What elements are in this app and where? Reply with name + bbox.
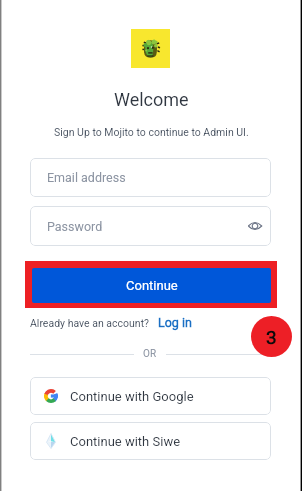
button[interactable]: Email address	[30, 158, 271, 197]
staticText: 3	[266, 326, 277, 348]
staticText: Log in	[158, 315, 192, 330]
staticText: Sign Up to Mojito to continue to Admin U…	[54, 126, 249, 138]
button[interactable]: Continue with Google	[30, 377, 271, 415]
staticText: Password	[47, 219, 103, 234]
staticText: OR	[143, 348, 157, 360]
button[interactable]: Log in	[158, 315, 192, 330]
staticText: Continue with Google	[70, 389, 194, 404]
button[interactable]: Password	[30, 206, 271, 246]
button[interactable]: Continue with Siwe	[30, 422, 271, 460]
staticText: Continue	[126, 278, 178, 293]
button[interactable]: Show password	[246, 217, 264, 235]
staticText: Already have an account?	[30, 317, 150, 329]
staticText: Email address	[47, 170, 126, 185]
staticText: Welcome	[114, 89, 189, 110]
staticText: Continue with Siwe	[70, 434, 181, 449]
button[interactable]: Continue	[32, 268, 271, 303]
